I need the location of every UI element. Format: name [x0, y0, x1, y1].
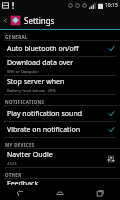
staticText: 10:15 — [105, 2, 118, 9]
staticText: Settings — [24, 15, 55, 26]
button[interactable]: Device settings — [106, 154, 115, 163]
staticText: Stop server when — [7, 77, 65, 87]
button[interactable]: Stop server when — [0, 76, 120, 94]
staticText: Battery level below: 20% — [7, 88, 56, 94]
staticText: Naviter Oudie — [7, 150, 53, 160]
staticText: Play notification sound — [7, 109, 83, 119]
button[interactable]: Recent apps — [80, 185, 120, 200]
staticText: GENERAL — [5, 34, 28, 40]
staticText: Auto bluetooth on/off — [7, 44, 79, 54]
button[interactable]: Play notification sound — [0, 106, 120, 121]
button[interactable]: Download data over — [0, 57, 120, 75]
button[interactable]: Auto bluetooth on/off — [0, 41, 120, 56]
button[interactable]: Back — [0, 11, 10, 29]
staticText: NOTIFICATIONS — [5, 99, 45, 105]
staticText: Vibrate on notification — [7, 125, 80, 135]
button[interactable]: Vibrate on notification — [0, 122, 120, 137]
staticText: MY DEVICES — [5, 142, 35, 148]
staticText: Wifi or Dataplan — [7, 69, 39, 75]
staticText: 4524 — [7, 161, 17, 167]
button[interactable]: Back — [0, 185, 40, 200]
button[interactable]: Feedback — [0, 179, 120, 185]
button[interactable]: Home — [40, 185, 80, 200]
staticText: Download data over — [7, 58, 74, 68]
staticText: OTHER — [5, 172, 22, 178]
button[interactable]: Naviter Oudie — [0, 149, 120, 167]
staticText: Feedback — [7, 179, 39, 185]
